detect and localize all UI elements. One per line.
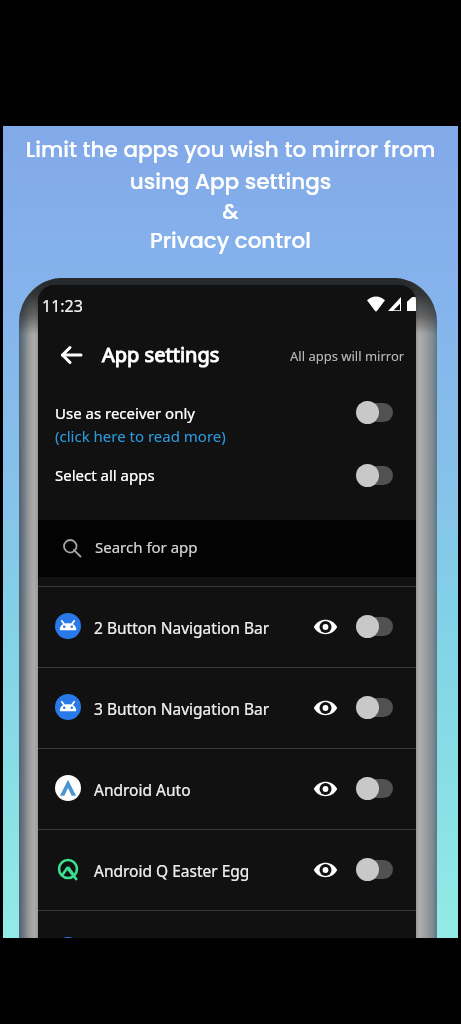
button[interactable]: Toggle bbox=[356, 696, 393, 719]
button[interactable]: Toggle bbox=[356, 464, 393, 487]
staticText: Android Auto bbox=[94, 779, 191, 800]
staticText: 3 Button Navigation Bar bbox=[94, 698, 270, 719]
staticText: App settings bbox=[102, 341, 220, 368]
staticText: Privacy control bbox=[3, 225, 458, 255]
button[interactable]: Use as receiver only bbox=[38, 392, 416, 444]
staticText: Android Q Easter Egg bbox=[94, 860, 250, 881]
button[interactable] bbox=[38, 748, 416, 829]
button[interactable]: Toggle bbox=[356, 615, 393, 638]
button[interactable]: Back bbox=[55, 340, 87, 370]
staticText: Search for app bbox=[95, 537, 198, 557]
button[interactable] bbox=[38, 586, 416, 667]
button[interactable]: Toggle bbox=[356, 858, 393, 881]
button[interactable]: Visibility bbox=[310, 776, 340, 802]
button[interactable]: Toggle bbox=[356, 777, 393, 800]
button[interactable] bbox=[38, 829, 416, 910]
staticText: 11:23 bbox=[42, 295, 83, 317]
button[interactable]: Visibility bbox=[310, 614, 340, 640]
staticText: using App settings bbox=[3, 166, 458, 196]
staticText: All apps will mirror bbox=[290, 347, 405, 365]
button[interactable] bbox=[38, 910, 416, 938]
staticText: 2 Button Navigation Bar bbox=[94, 617, 270, 638]
staticText: Use as receiver only bbox=[55, 403, 195, 423]
staticText: & bbox=[3, 196, 458, 226]
button[interactable]: Search for app bbox=[38, 520, 416, 577]
button[interactable]: Toggle bbox=[356, 401, 393, 424]
button[interactable]: Visibility bbox=[310, 857, 340, 883]
staticText: Limit the apps you wish to mirror from bbox=[3, 134, 458, 164]
button[interactable]: Select all apps bbox=[38, 455, 416, 497]
button[interactable]: Visibility bbox=[310, 695, 340, 721]
staticText: (click here to read more) bbox=[55, 426, 226, 446]
button[interactable] bbox=[38, 667, 416, 748]
staticText: Select all apps bbox=[55, 465, 155, 485]
